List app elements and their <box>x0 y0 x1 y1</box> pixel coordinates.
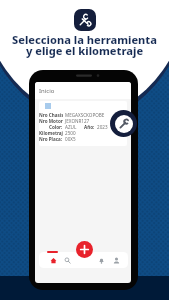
staticText: MEGAXSCKOPOBE <box>65 112 105 118</box>
staticText: AZUL <box>65 124 77 130</box>
staticText: Nro Motor: <box>39 118 63 124</box>
button[interactable]: Inicio <box>48 254 59 267</box>
staticText: Kilometraje: <box>39 130 63 136</box>
button[interactable]: Agregar <box>76 241 93 258</box>
staticText: Año: <box>84 124 95 130</box>
staticText: Inicio <box>39 87 55 95</box>
button[interactable]: Notificaciones <box>96 254 107 267</box>
staticText: Selecciona la herramienta y elige el kil… <box>12 32 157 58</box>
staticText: JEXONR127 <box>65 118 90 124</box>
staticText: 2023 <box>97 124 108 130</box>
button[interactable]: Buscar <box>62 254 73 267</box>
staticText: Nro Chasis: <box>39 112 63 118</box>
staticText: 00X5 <box>65 136 76 142</box>
button[interactable]: Perfil <box>111 254 122 267</box>
staticText: 2500 <box>65 130 76 136</box>
staticText: Color: <box>49 124 63 130</box>
button[interactable]: Herramienta <box>110 110 137 137</box>
staticText: Nro Placa: <box>39 136 63 142</box>
